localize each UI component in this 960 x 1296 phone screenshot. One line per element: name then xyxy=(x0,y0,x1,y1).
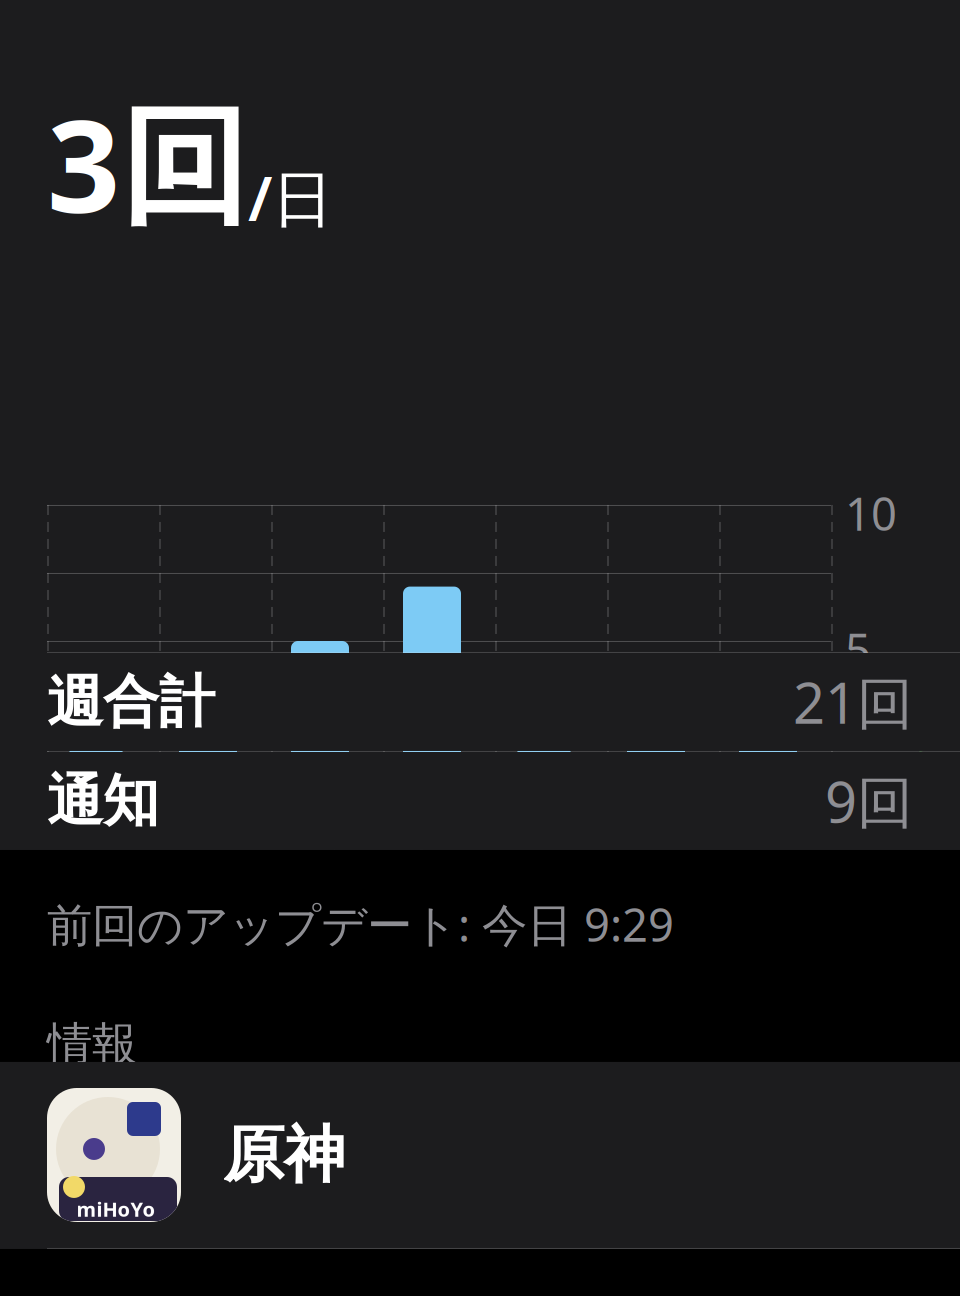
staticText: 3回 xyxy=(47,78,248,248)
staticText: miHoYo xyxy=(76,1196,155,1222)
staticText: 火 xyxy=(289,795,340,857)
staticText: 5 xyxy=(845,619,871,679)
staticText: 平均 xyxy=(845,705,931,758)
staticText: 土 xyxy=(737,795,788,857)
staticText: 0 xyxy=(845,751,871,811)
staticText: 月 xyxy=(177,795,228,857)
staticText: 週合計 xyxy=(47,668,215,736)
staticText: 9回 xyxy=(825,764,913,838)
staticText: 原神 xyxy=(223,1117,345,1193)
staticText: 通知 xyxy=(47,767,159,835)
button[interactable]: miHoYo xyxy=(0,1062,960,1248)
staticText: 10 xyxy=(845,483,897,543)
staticText: 前回のアップデート: 今日 9:29 xyxy=(47,894,674,954)
staticText: 金 xyxy=(625,795,676,857)
staticText: 日 xyxy=(65,795,116,857)
button[interactable]: 通知 xyxy=(0,752,960,850)
staticText: /日 xyxy=(248,156,333,238)
staticText: 木 xyxy=(513,795,564,857)
staticText: 水 xyxy=(401,795,452,857)
button[interactable]: 週合計 xyxy=(0,653,960,751)
staticText: 情報 xyxy=(47,1016,137,1072)
staticText: 21回 xyxy=(793,665,913,739)
